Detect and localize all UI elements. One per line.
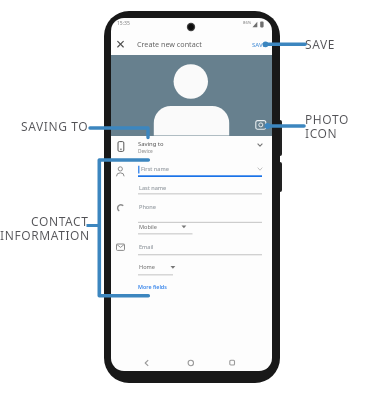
- staticText: SAVING TO: [21, 118, 89, 134]
- staticText: Device: [138, 148, 153, 155]
- staticText: INFORMATION: [0, 227, 89, 243]
- staticText: SAVE: [305, 36, 336, 52]
- button[interactable]: [224, 356, 240, 370]
- staticText: Create new contact: [137, 39, 202, 49]
- button[interactable]: [114, 181, 268, 196]
- button[interactable]: [114, 224, 194, 236]
- button[interactable]: [114, 240, 268, 257]
- staticText: More fields: [138, 283, 167, 290]
- button[interactable]: [114, 138, 268, 155]
- staticText: Email: [139, 243, 154, 251]
- staticText: CONTACT: [31, 213, 89, 229]
- staticText: Home: [139, 263, 155, 271]
- button[interactable]: [114, 200, 268, 224]
- staticText: 15:35: [117, 20, 130, 27]
- button[interactable]: [114, 162, 268, 178]
- button[interactable]: [136, 280, 168, 292]
- staticText: 86%: [243, 20, 252, 26]
- staticText: Last name: [139, 184, 167, 192]
- button[interactable]: [252, 116, 270, 133]
- staticText: SAVE: [252, 41, 267, 49]
- staticText: Phone: [139, 203, 156, 211]
- staticText: PHOTO: [305, 111, 349, 127]
- staticText: Saving to: [138, 140, 164, 148]
- button[interactable]: [248, 37, 270, 50]
- staticText: Mobile: [139, 223, 157, 231]
- button[interactable]: [138, 356, 154, 370]
- button[interactable]: [183, 356, 199, 370]
- button[interactable]: [115, 38, 127, 50]
- staticText: ICON: [305, 125, 338, 141]
- button[interactable]: [114, 261, 176, 277]
- staticText: First name: [141, 165, 169, 173]
